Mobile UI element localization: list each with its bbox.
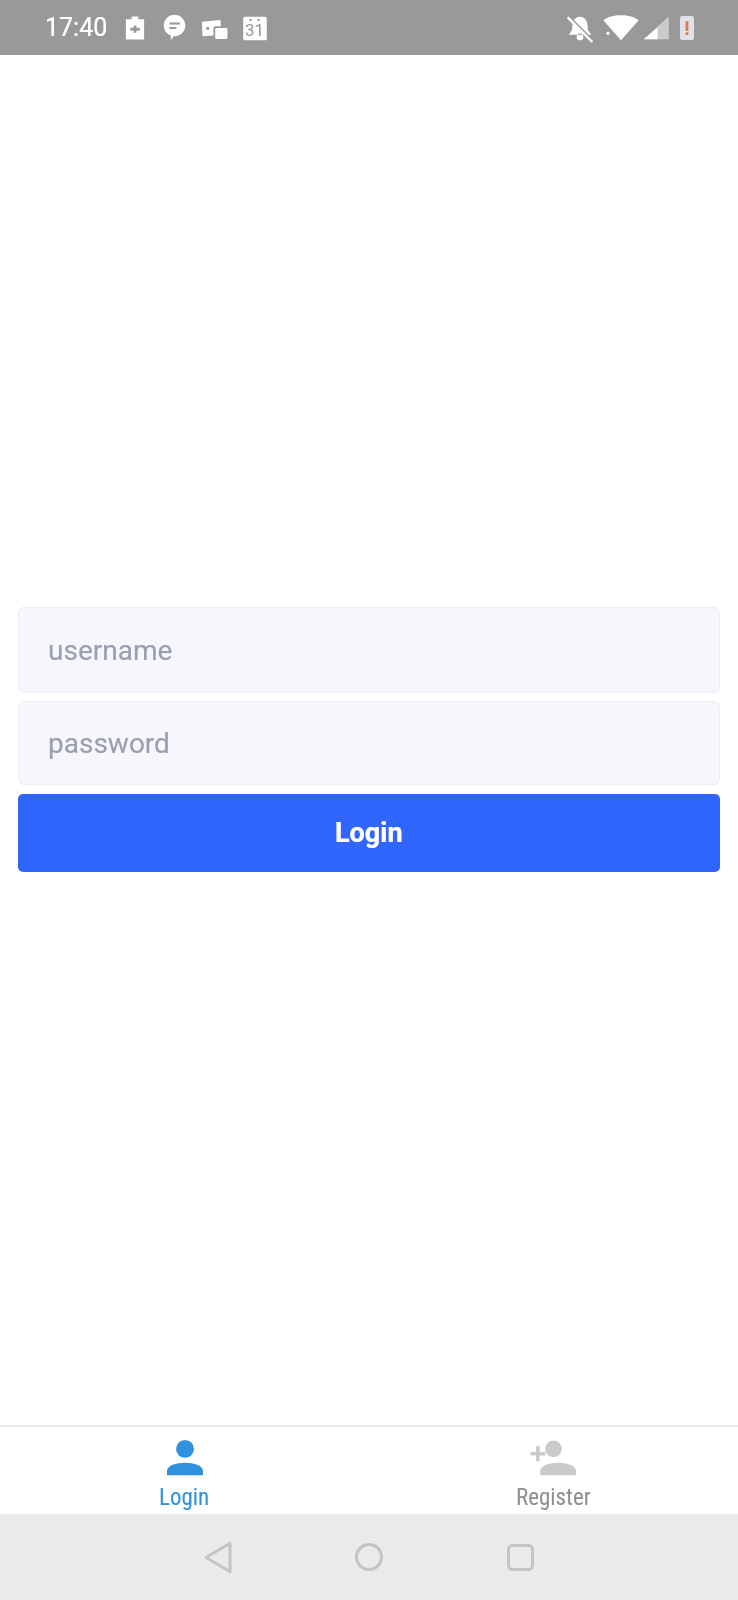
staticText: password bbox=[48, 727, 170, 760]
button[interactable]: Login bbox=[0, 1427, 369, 1511]
staticText: Register bbox=[516, 1484, 591, 1511]
button[interactable]: Register bbox=[369, 1427, 738, 1511]
staticText: 31 bbox=[245, 20, 265, 40]
button[interactable]: Home bbox=[331, 1519, 407, 1595]
button[interactable]: username bbox=[18, 607, 720, 693]
button[interactable]: password bbox=[18, 701, 720, 785]
staticText: Login bbox=[335, 817, 403, 849]
button[interactable]: Login bbox=[18, 794, 720, 872]
staticText: Login bbox=[159, 1484, 210, 1511]
staticText: username bbox=[48, 634, 173, 667]
button[interactable]: Back bbox=[180, 1519, 256, 1595]
staticText: 17:40 bbox=[45, 13, 108, 42]
button[interactable]: Recents bbox=[482, 1519, 558, 1595]
